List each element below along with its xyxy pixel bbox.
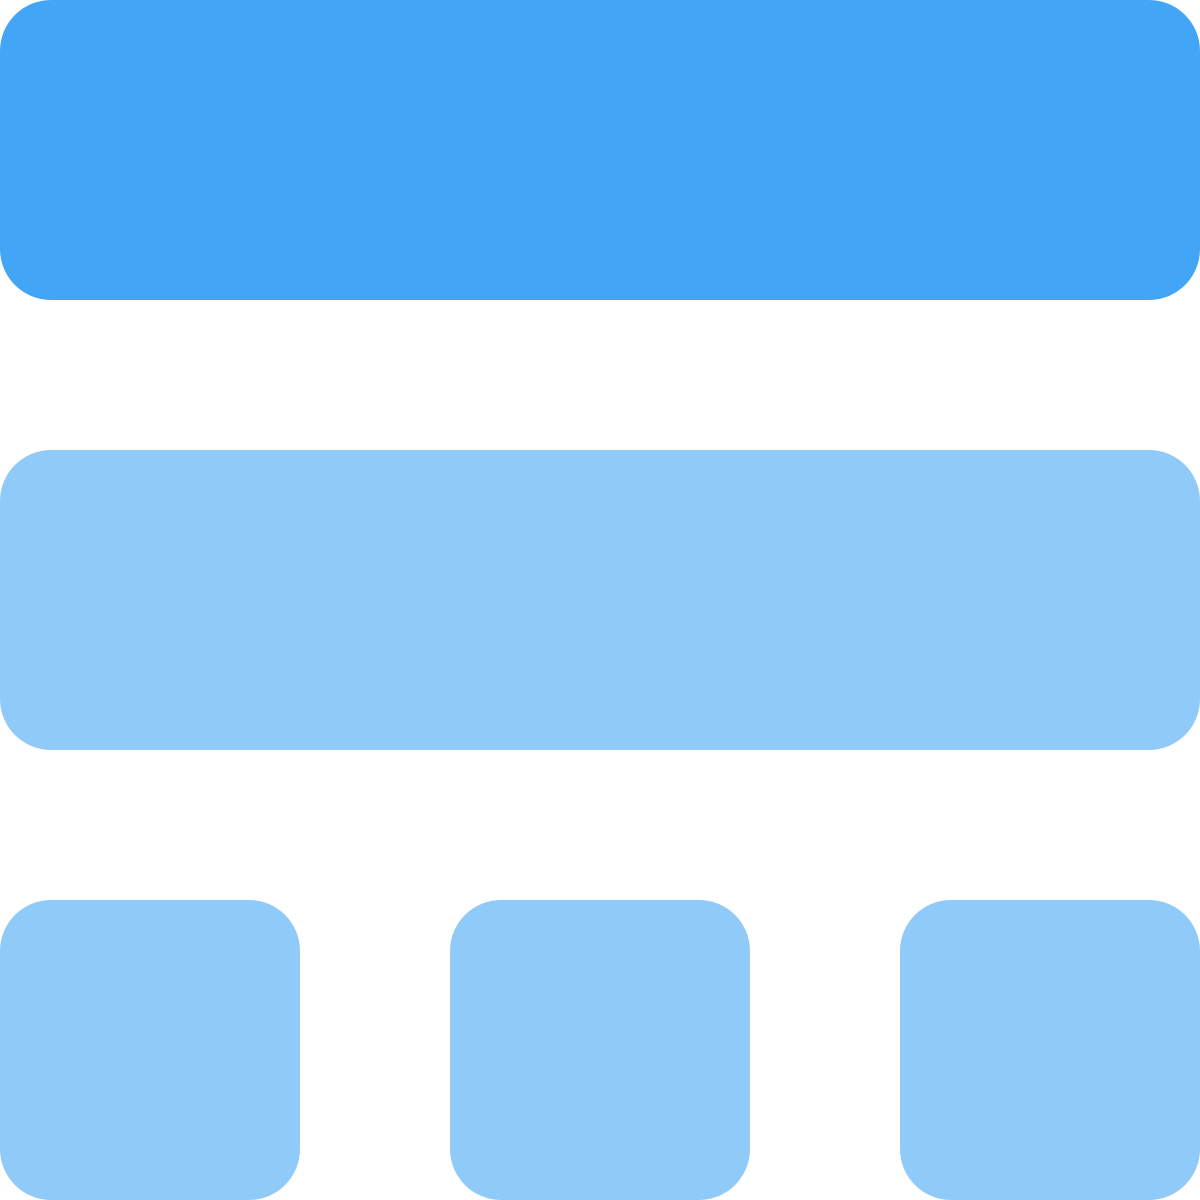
button[interactable]: Shortcut three	[900, 900, 1200, 1200]
button[interactable]: Shortcut one	[0, 900, 300, 1200]
button[interactable]: Shortcut two	[450, 900, 750, 1200]
button[interactable]: Summary	[0, 450, 1200, 750]
button[interactable]: Featured	[0, 0, 1200, 300]
